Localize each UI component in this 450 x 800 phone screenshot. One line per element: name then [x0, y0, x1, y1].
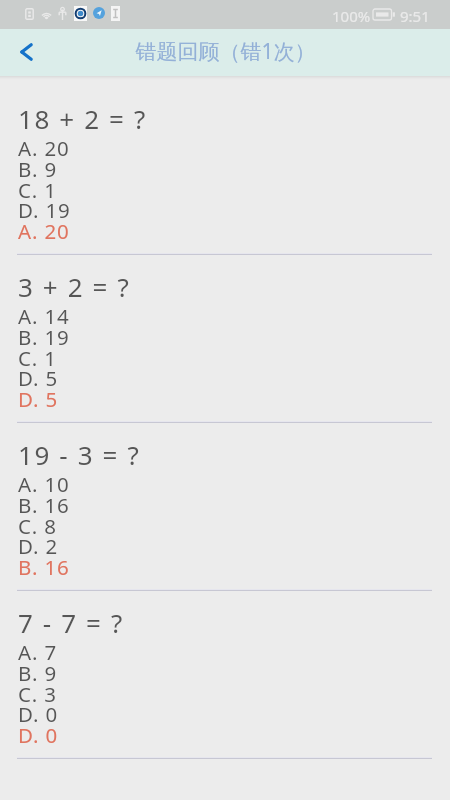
staticText: B. 16: [18, 491, 70, 519]
staticText: 错题回顾（错1次）: [135, 37, 316, 66]
button[interactable]: 19 - 3 = ?: [0, 422, 450, 590]
staticText: D. 5: [18, 364, 58, 392]
staticText: A. 10: [18, 470, 70, 498]
button[interactable]: 7 - 7 = ?: [0, 590, 450, 758]
button[interactable]: Back: [0, 35, 55, 70]
staticText: A. 7: [18, 638, 57, 666]
staticText: A. 20: [18, 134, 70, 162]
staticText: B. 9: [18, 155, 57, 183]
staticText: 18 + 2 = ?: [18, 101, 147, 136]
staticText: C. 8: [18, 512, 57, 540]
staticText: B. 16: [18, 553, 70, 581]
staticText: 9:51: [400, 6, 430, 26]
staticText: 3 + 2 = ?: [18, 269, 131, 304]
button[interactable]: 3 + 2 = ?: [0, 254, 450, 422]
button[interactable]: 18 + 2 = ?: [0, 86, 450, 254]
staticText: D. 19: [18, 196, 71, 224]
staticText: 7 - 7 = ?: [18, 605, 124, 640]
staticText: 19 - 3 = ?: [18, 437, 141, 472]
staticText: A. 14: [18, 302, 70, 330]
staticText: B. 9: [18, 659, 57, 687]
staticText: D. 5: [18, 385, 58, 413]
staticText: 100%: [332, 6, 371, 26]
staticText: D. 0: [18, 700, 58, 728]
staticText: A. 20: [18, 217, 70, 245]
staticText: C. 3: [18, 680, 57, 708]
staticText: B. 19: [18, 323, 70, 351]
staticText: C. 1: [18, 344, 57, 372]
staticText: D. 0: [18, 721, 58, 749]
staticText: C. 1: [18, 176, 57, 204]
staticText: D. 2: [18, 532, 58, 560]
